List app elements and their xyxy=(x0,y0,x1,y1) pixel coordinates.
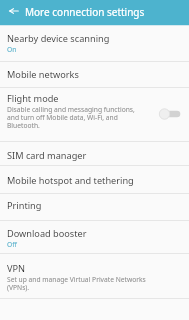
staticText: More connection settings xyxy=(25,5,145,19)
button[interactable]: Mobile networks xyxy=(0,62,189,87)
button[interactable]: Download booster xyxy=(0,221,189,253)
button[interactable]: VPN xyxy=(0,254,189,298)
staticText: Mobile networks xyxy=(7,68,79,81)
staticText: Flight mode xyxy=(7,92,59,105)
staticText: VPN xyxy=(7,262,26,275)
button[interactable]: Mobile hotspot and tethering xyxy=(0,166,189,193)
staticText: Off xyxy=(7,240,17,249)
staticText: Disable calling and messaging functions,… xyxy=(7,105,143,130)
button[interactable]: Navigate up xyxy=(3,0,24,25)
button[interactable]: Printing xyxy=(0,194,189,220)
button[interactable]: SIM card manager xyxy=(0,142,189,165)
staticText: SIM card manager xyxy=(7,149,87,162)
button[interactable]: Flight mode xyxy=(159,107,183,121)
staticText: On xyxy=(7,45,17,54)
staticText: Set up and manage Virtual Private Networ… xyxy=(7,275,157,292)
staticText: Download booster xyxy=(7,227,87,240)
staticText: Printing xyxy=(7,199,42,212)
staticText: Nearby device scanning xyxy=(7,32,110,45)
button[interactable]: Nearby device scanning xyxy=(0,26,189,61)
staticText: Mobile hotspot and tethering xyxy=(7,174,134,187)
button[interactable]: Flight mode xyxy=(0,88,189,141)
